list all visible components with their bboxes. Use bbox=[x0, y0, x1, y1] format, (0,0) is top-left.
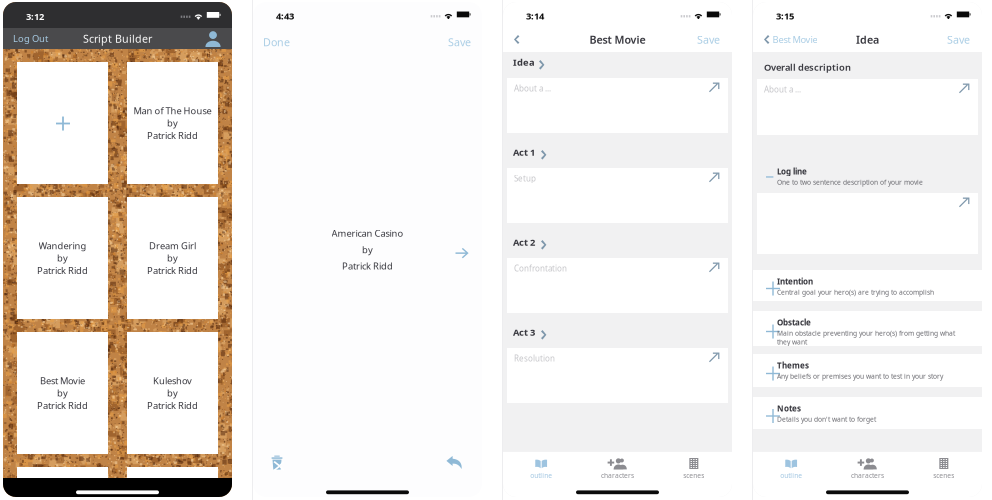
button[interactable]: Delete bbox=[265, 450, 291, 476]
staticText: About a ... bbox=[764, 84, 801, 95]
button[interactable]: Expand bbox=[709, 172, 720, 183]
staticText: Setup bbox=[514, 173, 536, 184]
staticText: Dream Girl bbox=[149, 239, 196, 252]
button[interactable]: Expand bbox=[959, 197, 970, 208]
button[interactable]: Save bbox=[687, 27, 732, 52]
staticText: Act 2 bbox=[513, 236, 535, 248]
button[interactable]: Expand bbox=[709, 352, 720, 363]
staticText: Best Movie bbox=[589, 32, 645, 47]
staticText: One to two sentence description of your … bbox=[777, 178, 923, 186]
staticText: Script Builder bbox=[83, 31, 152, 46]
staticText: 3:15 bbox=[776, 10, 794, 22]
staticText: outline bbox=[530, 471, 552, 480]
button[interactable]: Dream Girl bbox=[127, 197, 218, 319]
staticText: Act 3 bbox=[513, 326, 535, 338]
button[interactable]: Back bbox=[503, 27, 528, 52]
staticText: Central goal your hero(s) are trying to … bbox=[777, 288, 934, 296]
button[interactable]: outline bbox=[503, 451, 579, 484]
staticText: by bbox=[167, 117, 178, 129]
staticText: Details you don't want to forget bbox=[777, 415, 876, 423]
staticText: Wandering bbox=[38, 239, 86, 252]
button[interactable]: Wandering bbox=[17, 197, 108, 319]
button[interactable]: Kuleshov bbox=[127, 332, 218, 454]
staticText: Log line bbox=[777, 166, 807, 177]
staticText: Act 1 bbox=[513, 146, 535, 158]
staticText: Log Out bbox=[13, 32, 48, 45]
staticText: Done bbox=[263, 35, 290, 49]
staticText: Any beliefs or premises you want to test… bbox=[777, 372, 943, 380]
button[interactable]: Idea bbox=[503, 52, 732, 78]
staticText: Themes bbox=[777, 360, 809, 371]
button[interactable]: Themes bbox=[753, 354, 982, 387]
staticText: Patrick Ridd bbox=[147, 129, 198, 142]
staticText: Patrick Ridd bbox=[37, 264, 88, 277]
staticText: 3:12 bbox=[26, 10, 44, 23]
staticText: Obstacle bbox=[777, 317, 811, 328]
staticText: Patrick Ridd bbox=[342, 260, 393, 272]
staticText: Patrick Ridd bbox=[147, 399, 198, 412]
button[interactable]: Expand bbox=[959, 83, 970, 94]
button[interactable]: Open script bbox=[447, 239, 477, 266]
staticText: scenes bbox=[933, 471, 954, 480]
staticText: by bbox=[57, 387, 68, 399]
staticText: 3:14 bbox=[526, 10, 544, 22]
staticText: Kuleshov bbox=[153, 374, 192, 387]
staticText: 4:43 bbox=[276, 10, 294, 22]
staticText: Save bbox=[697, 32, 720, 47]
staticText: characters bbox=[851, 471, 884, 480]
staticText: outline bbox=[780, 471, 802, 480]
button[interactable]: Account bbox=[199, 28, 232, 49]
staticText: Save bbox=[947, 32, 970, 47]
button[interactable]: Best Movie bbox=[17, 332, 108, 454]
button[interactable]: characters bbox=[579, 451, 656, 484]
button[interactable]: outline bbox=[753, 451, 829, 484]
button[interactable]: Log Out bbox=[3, 28, 54, 49]
button[interactable]: Notes bbox=[753, 397, 982, 429]
staticText: by bbox=[167, 387, 178, 399]
staticText: Best Movie bbox=[772, 33, 817, 46]
staticText: Main obstacle preventing your hero(s) fr… bbox=[777, 329, 955, 346]
staticText: Notes bbox=[777, 403, 801, 414]
button[interactable]: Intention bbox=[753, 270, 982, 301]
staticText: by bbox=[362, 243, 373, 256]
staticText: Resolution bbox=[514, 353, 555, 364]
button[interactable]: Expand bbox=[709, 82, 720, 93]
button[interactable]: scenes bbox=[906, 451, 982, 484]
staticText: Overall description bbox=[764, 61, 851, 73]
button[interactable] bbox=[17, 467, 108, 500]
button[interactable]: Log line bbox=[753, 162, 982, 192]
button[interactable]: Obstacle bbox=[753, 311, 982, 346]
staticText: Save bbox=[448, 35, 471, 49]
button[interactable]: scenes bbox=[656, 451, 732, 484]
staticText: About a ... bbox=[514, 83, 551, 94]
button[interactable]: Man of The House bbox=[127, 62, 218, 184]
button[interactable]: Expand bbox=[709, 262, 720, 273]
staticText: characters bbox=[601, 471, 634, 480]
staticText: Patrick Ridd bbox=[37, 399, 88, 412]
button[interactable]: Best Movie bbox=[753, 27, 826, 52]
button[interactable] bbox=[17, 62, 108, 184]
staticText: American Casino bbox=[331, 227, 403, 239]
staticText: by bbox=[167, 252, 178, 264]
staticText: Best Movie bbox=[40, 374, 85, 387]
staticText: Idea bbox=[856, 32, 879, 47]
button[interactable]: Reply bbox=[439, 448, 471, 476]
button[interactable]: Act 2 bbox=[503, 232, 732, 258]
staticText: Man of The House bbox=[133, 104, 211, 117]
button[interactable]: Save bbox=[438, 32, 482, 52]
button[interactable]: Done bbox=[253, 32, 300, 52]
button[interactable]: characters bbox=[829, 451, 906, 484]
staticText: Confrontation bbox=[514, 263, 567, 274]
button[interactable]: Act 3 bbox=[503, 322, 732, 348]
staticText: Idea bbox=[513, 56, 535, 68]
staticText: Patrick Ridd bbox=[147, 264, 198, 277]
button[interactable]: Save bbox=[937, 27, 982, 52]
staticText: by bbox=[57, 252, 68, 264]
button[interactable]: Act 1 bbox=[503, 142, 732, 168]
staticText: Intention bbox=[777, 276, 813, 287]
staticText: scenes bbox=[683, 471, 704, 480]
button[interactable] bbox=[127, 467, 218, 500]
